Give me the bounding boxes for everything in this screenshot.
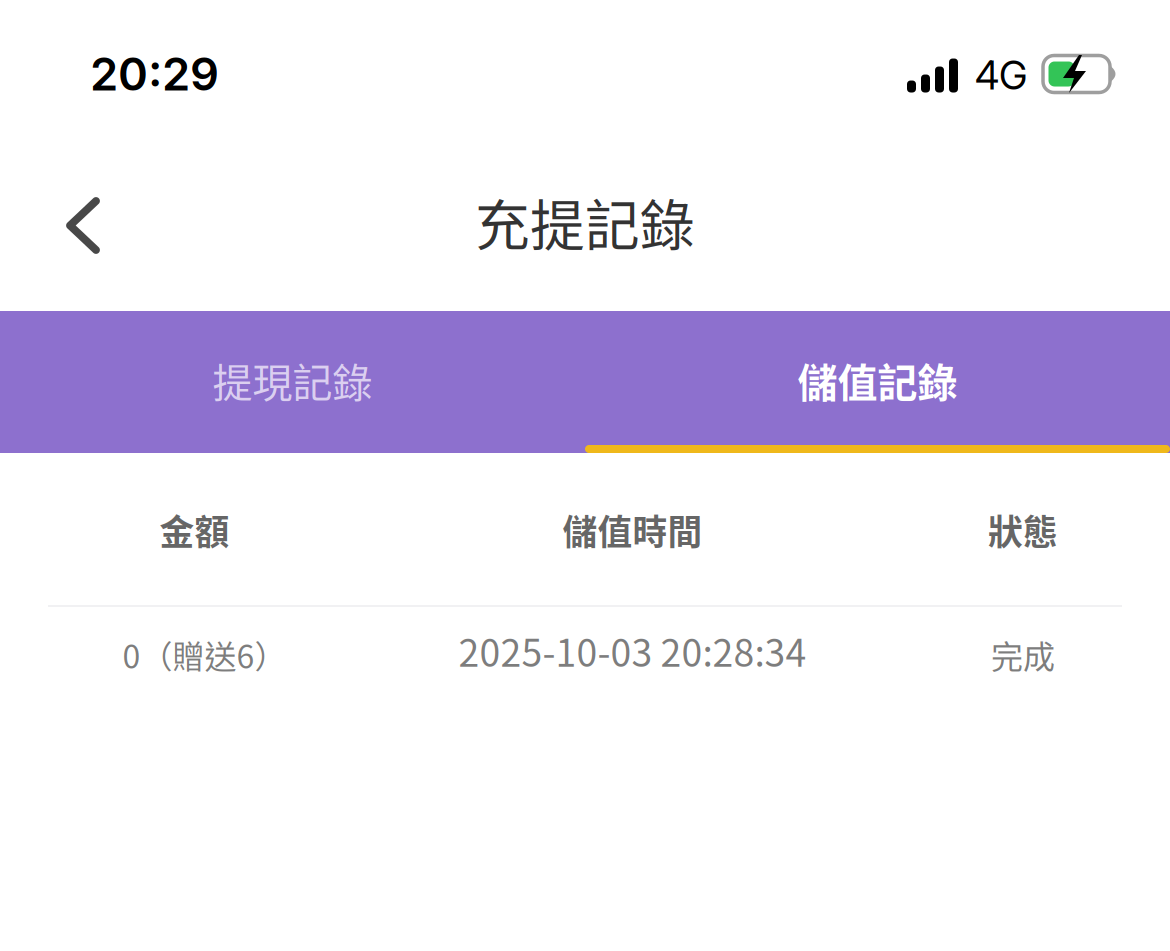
staticText: 狀態 <box>988 505 1058 555</box>
staticText: 20:29 <box>90 47 219 101</box>
staticText: 4G <box>975 52 1027 99</box>
staticText: 金額 <box>159 505 229 555</box>
staticText: 0（贈送6） <box>122 631 286 678</box>
button[interactable]: 提現記錄 <box>0 311 585 453</box>
button[interactable]: Back <box>38 173 128 269</box>
staticText: 儲值時間 <box>562 505 702 555</box>
staticText: 提現記錄 <box>212 351 372 409</box>
staticText: 2025-10-03 20:28:34 <box>458 623 806 678</box>
button[interactable]: 儲值記錄 <box>585 311 1170 453</box>
staticText: 充提記錄 <box>475 182 695 261</box>
staticText: 儲值記錄 <box>797 351 957 409</box>
staticText: 完成 <box>991 631 1055 678</box>
